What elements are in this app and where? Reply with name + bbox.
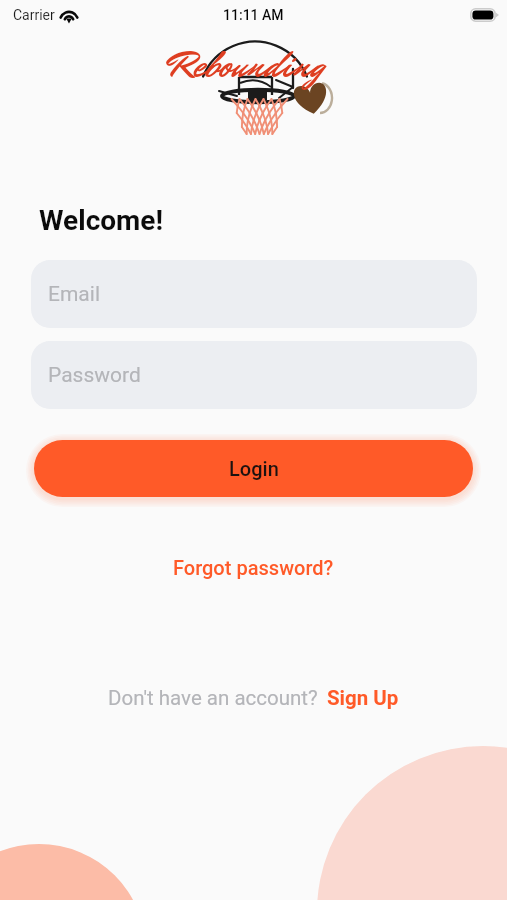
staticText: Password [48,363,141,388]
button[interactable]: Email [31,260,477,328]
staticText: Forgot password? [173,556,334,579]
staticText: 11:11 AM [223,7,284,23]
staticText: Carrier [13,7,55,23]
staticText: Login [229,457,279,480]
button[interactable]: Password [31,341,477,409]
other: Wifi [60,9,78,22]
staticText: Rebounding [168,39,324,92]
button[interactable]: Login [34,440,473,497]
staticText: Don't have an account? [108,686,318,710]
staticText: Email [48,282,100,307]
button[interactable]: Sign Up [327,686,399,710]
staticText: Sign Up [327,686,399,710]
button[interactable]: Forgot password? [167,553,340,582]
staticText: Welcome! [39,204,164,237]
other: Battery [470,8,499,22]
